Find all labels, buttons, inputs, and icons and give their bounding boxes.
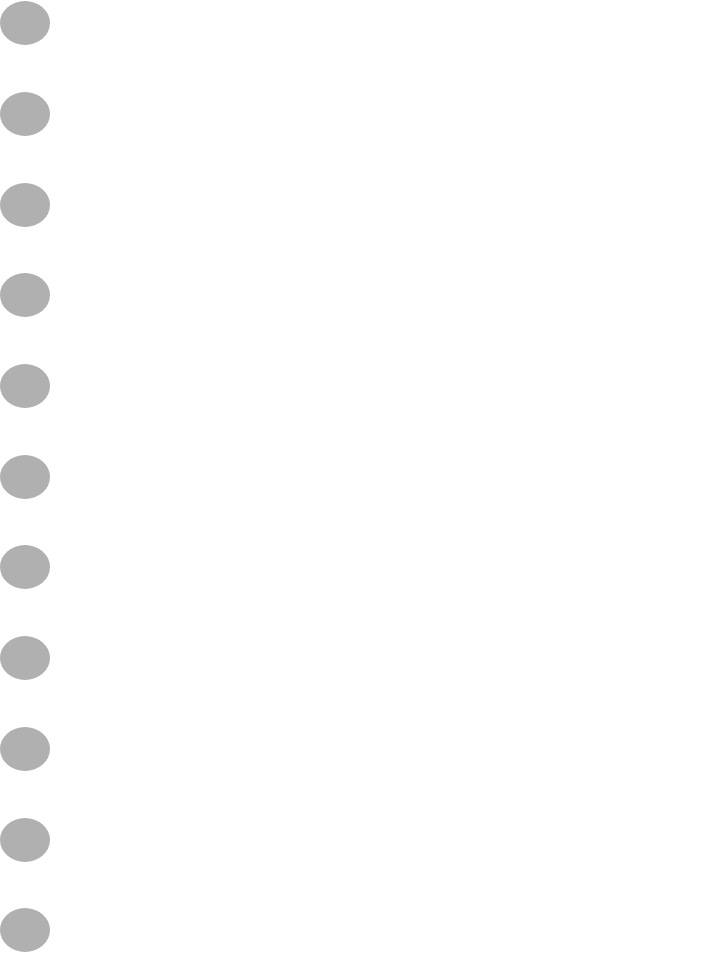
button[interactable]: List item 7 bbox=[0, 545, 706, 589]
button[interactable]: List item 6 bbox=[0, 455, 706, 499]
button[interactable]: List item 8 bbox=[0, 636, 706, 680]
button[interactable]: List item 2 bbox=[0, 92, 706, 136]
button[interactable]: List item 11 bbox=[0, 908, 706, 952]
button[interactable]: List item 4 bbox=[0, 273, 706, 317]
button[interactable]: List item 10 bbox=[0, 818, 706, 862]
button[interactable]: List item 3 bbox=[0, 183, 706, 227]
button[interactable]: List item 5 bbox=[0, 364, 706, 408]
button[interactable]: List item 9 bbox=[0, 727, 706, 771]
button[interactable]: List item 1 bbox=[0, 1, 706, 45]
